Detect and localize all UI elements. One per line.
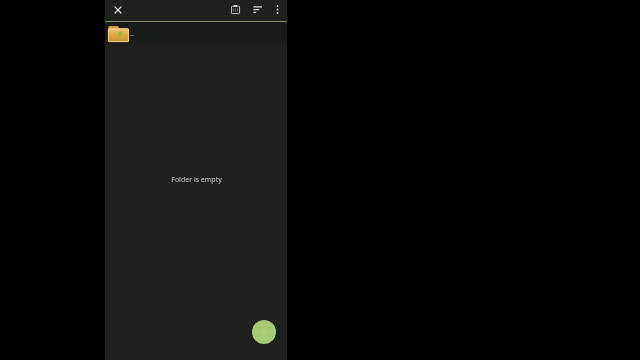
button[interactable]: More options [268,0,287,19]
button[interactable]: Sort [248,0,267,19]
staticText: Folder is empty [171,175,222,185]
button[interactable]: .. [105,22,287,46]
button[interactable]: Paste [226,0,245,19]
button[interactable]: Close [108,0,127,19]
button[interactable]: Add [252,320,276,344]
staticText: .. [130,29,134,39]
